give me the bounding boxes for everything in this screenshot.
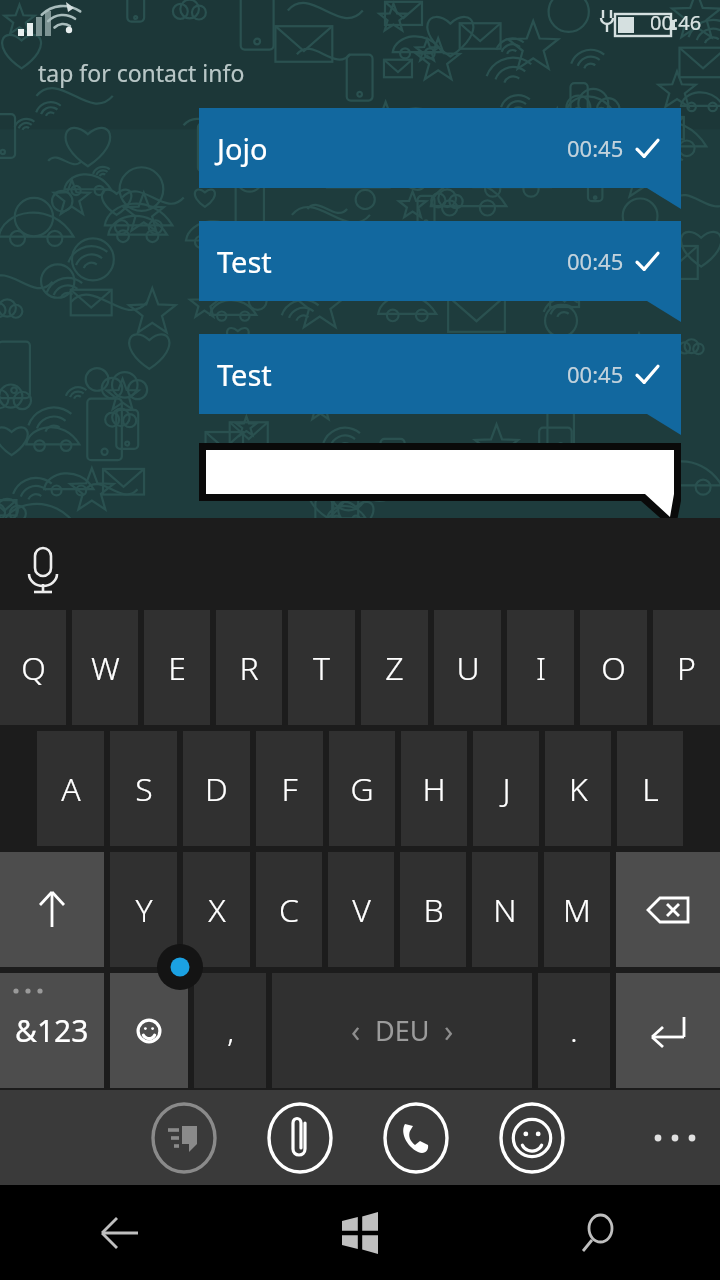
button[interactable]: E	[144, 610, 210, 725]
button[interactable]: Jojo	[199, 108, 681, 188]
staticText: O	[601, 646, 626, 690]
staticText: K	[569, 767, 588, 811]
staticText: N	[493, 888, 517, 932]
staticText: &123	[15, 1010, 89, 1051]
button[interactable]: Q	[0, 610, 66, 725]
staticText: .	[570, 1010, 578, 1051]
staticText: F	[281, 767, 298, 811]
staticText: M	[563, 888, 591, 932]
button[interactable]: Y	[110, 852, 177, 967]
button[interactable]: G	[329, 731, 395, 846]
button[interactable]: Shift	[0, 852, 104, 967]
button[interactable]: S	[110, 731, 177, 846]
staticText: Jojo	[217, 129, 268, 168]
button[interactable]: ‹	[272, 973, 532, 1088]
button[interactable]: Enter	[616, 973, 720, 1088]
button[interactable]: Attach	[266, 1104, 334, 1172]
staticText: ›	[444, 1010, 454, 1051]
staticText: 00:46	[650, 9, 702, 36]
staticText: 00:45	[567, 133, 624, 163]
button[interactable]: Test	[199, 221, 681, 301]
staticText: 00:45	[567, 246, 624, 276]
button[interactable]: B	[400, 852, 466, 967]
button[interactable]: J	[473, 731, 539, 846]
button[interactable]: H	[401, 731, 467, 846]
staticText: B	[423, 888, 444, 932]
staticText: H	[422, 767, 446, 811]
staticText: ‹	[351, 1010, 361, 1051]
button[interactable]: L	[617, 731, 683, 846]
staticText: P	[677, 646, 696, 690]
staticText: Q	[21, 646, 46, 690]
staticText: X	[208, 888, 226, 932]
button[interactable]: A	[37, 731, 104, 846]
button[interactable]: Send message	[150, 1104, 218, 1172]
button[interactable]: Z	[361, 610, 428, 725]
button[interactable]: I	[507, 610, 574, 725]
staticText: D	[205, 767, 228, 811]
button[interactable]	[199, 443, 681, 515]
button[interactable]: Emoji	[110, 973, 188, 1088]
button[interactable]: W	[72, 610, 138, 725]
button[interactable]: F	[256, 731, 323, 846]
button[interactable]: More options	[640, 1103, 710, 1173]
staticText: A	[61, 767, 81, 811]
button[interactable]: &123	[0, 973, 104, 1088]
button[interactable]: ,	[194, 973, 266, 1088]
staticText: R	[239, 646, 259, 690]
button[interactable]: O	[580, 610, 647, 725]
staticText: 00:45	[567, 359, 624, 389]
staticText: T	[313, 646, 330, 690]
staticText: ,	[227, 1010, 234, 1051]
staticText: S	[135, 767, 153, 811]
staticText: U	[456, 646, 480, 690]
button[interactable]: T	[288, 610, 355, 725]
button[interactable]: V	[328, 852, 394, 967]
staticText: tap for contact info	[38, 57, 245, 88]
button[interactable]: Voice input	[14, 538, 72, 596]
button[interactable]: K	[545, 731, 611, 846]
staticText: I	[536, 646, 546, 690]
staticText: Test	[217, 355, 272, 394]
button[interactable]: R	[216, 610, 282, 725]
staticText: DEU	[375, 1012, 430, 1049]
button[interactable]: M	[544, 852, 610, 967]
button[interactable]: Emoji	[498, 1104, 566, 1172]
staticText: J	[502, 767, 511, 811]
staticText: C	[279, 888, 299, 932]
button[interactable]: Backspace	[616, 852, 720, 967]
button[interactable]: Call	[382, 1104, 450, 1172]
button[interactable]: C	[256, 852, 322, 967]
staticText: G	[350, 767, 374, 811]
staticText: Y	[135, 888, 153, 932]
staticText: Test	[217, 242, 272, 281]
button[interactable]: N	[472, 852, 538, 967]
staticText: L	[642, 767, 659, 811]
button[interactable]: tap for contact info	[0, 50, 720, 94]
button[interactable]: Home	[240, 1185, 480, 1280]
staticText: E	[168, 646, 186, 690]
button[interactable]: .	[538, 973, 610, 1088]
staticText: W	[91, 646, 120, 690]
button[interactable]: D	[183, 731, 250, 846]
button[interactable]: U	[434, 610, 501, 725]
button[interactable]: Test	[199, 334, 681, 414]
button[interactable]: X	[183, 852, 250, 967]
staticText: V	[352, 888, 371, 932]
button[interactable]: Back	[0, 1185, 240, 1280]
button[interactable]: P	[653, 610, 720, 725]
button[interactable]: Search	[480, 1185, 720, 1280]
staticText: Z	[385, 646, 404, 690]
